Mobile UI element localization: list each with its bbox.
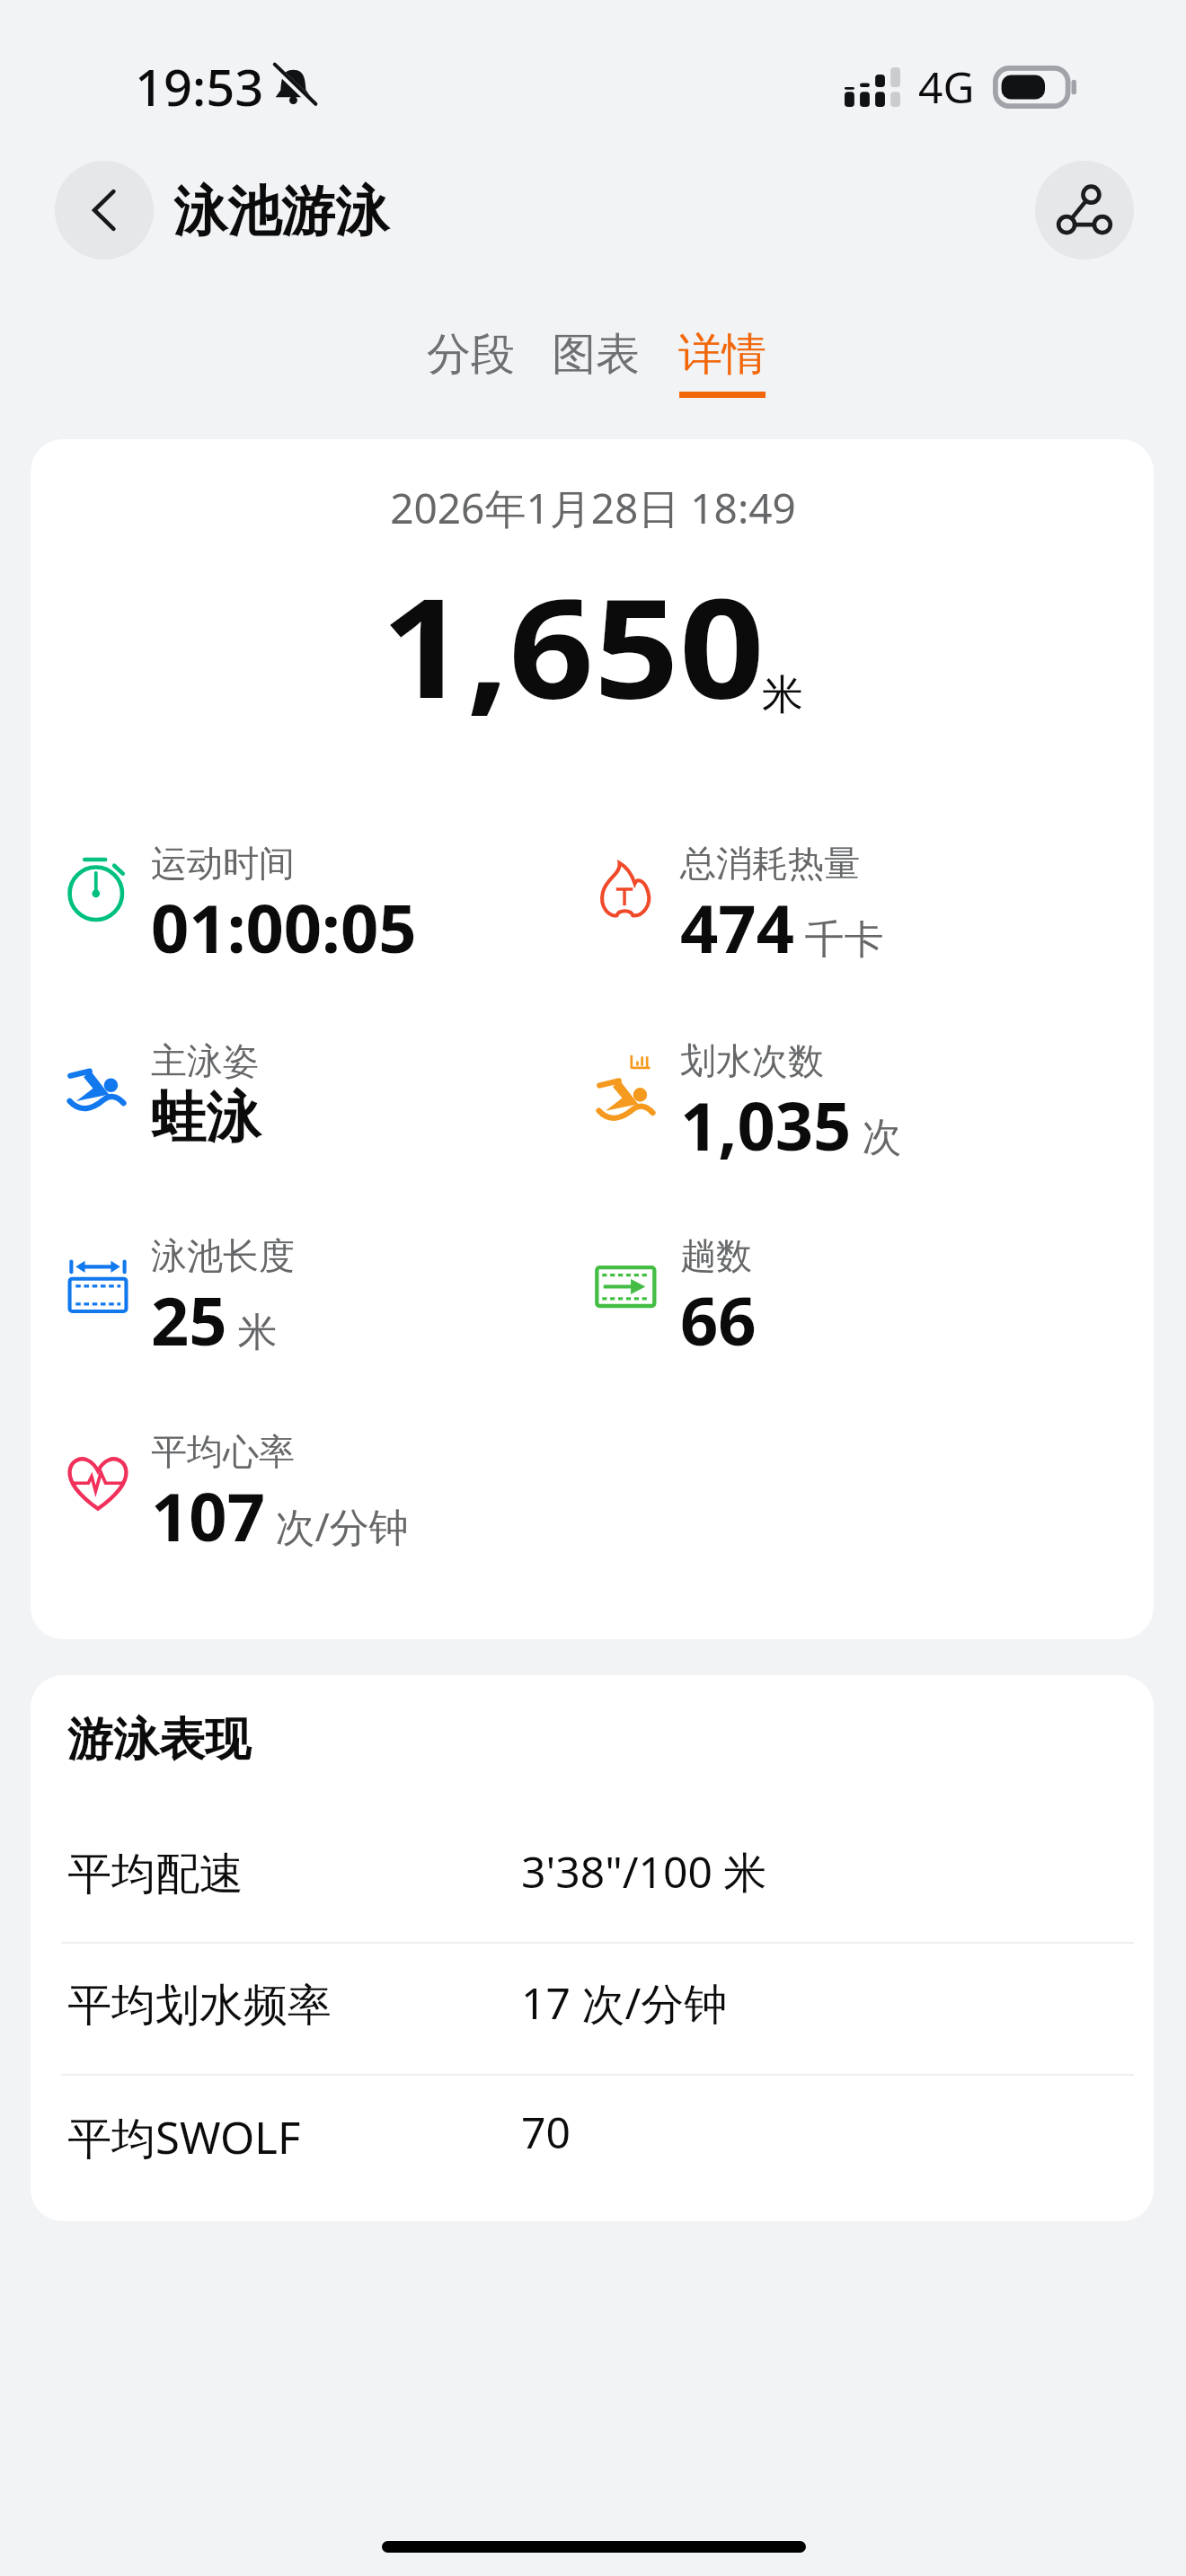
staticText: 米: [227, 1303, 278, 1357]
button[interactable]: Back: [55, 161, 154, 260]
button[interactable]: 平均SWOLF: [31, 2066, 1154, 2192]
staticText: 趟数: [680, 1233, 752, 1278]
staticText: 图表: [552, 327, 640, 383]
button[interactable]: Share: [1035, 161, 1134, 260]
button[interactable]: 详情: [664, 327, 781, 417]
staticText: 千卡: [794, 911, 884, 965]
staticText: 70: [521, 2103, 571, 2161]
staticText: 1,035: [680, 1080, 852, 1170]
staticText: 平均配速: [67, 1847, 243, 1902]
button[interactable]: 图表: [537, 327, 654, 417]
staticText: 1,650: [381, 552, 765, 738]
staticText: 详情: [678, 327, 766, 383]
staticText: 474: [680, 882, 794, 973]
staticText: 平均SWOLF: [67, 2107, 301, 2167]
staticText: 米: [762, 669, 803, 721]
staticText: 次: [852, 1108, 902, 1162]
staticText: 66: [680, 1275, 757, 1365]
staticText: 17 次/分钟: [521, 1973, 728, 2033]
staticText: 泳池长度: [151, 1233, 295, 1278]
staticText: 25: [151, 1275, 227, 1365]
staticText: 划水次数: [680, 1038, 824, 1083]
staticText: 107: [151, 1470, 265, 1561]
staticText: 平均心率: [151, 1429, 295, 1474]
staticText: 2026年1月28日 18:49: [0, 480, 1186, 536]
staticText: 总消耗热量: [680, 841, 860, 886]
staticText: 蛙泳: [151, 1083, 261, 1152]
button[interactable]: 分段: [412, 327, 529, 417]
staticText: 分段: [427, 327, 515, 383]
button[interactable]: 平均划水频率: [31, 1936, 1154, 2062]
staticText: 01:00:05: [151, 882, 417, 973]
staticText: 次/分钟: [265, 1499, 409, 1553]
staticText: 主泳姿: [151, 1038, 259, 1083]
staticText: 游泳表现: [67, 1711, 251, 1769]
staticText: 19:53: [135, 52, 264, 120]
staticText: 平均划水频率: [67, 1978, 332, 2033]
staticText: 运动时间: [151, 841, 295, 886]
staticText: 3'38"/100 米: [521, 1842, 767, 1901]
staticText: 4G: [918, 57, 975, 116]
staticText: 泳池游泳: [173, 178, 389, 246]
button[interactable]: 平均配速: [31, 1805, 1154, 1931]
